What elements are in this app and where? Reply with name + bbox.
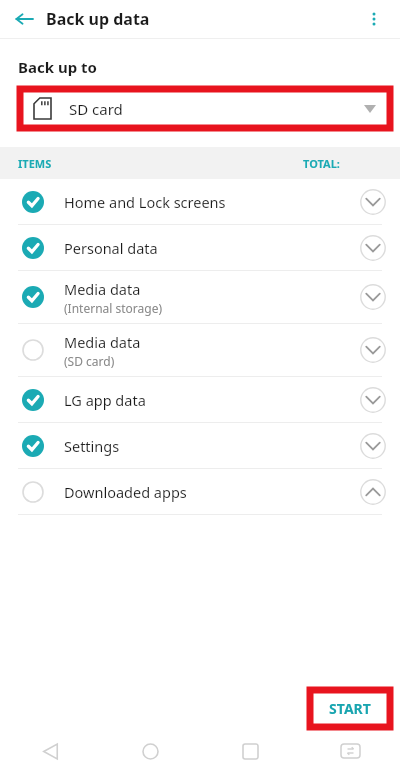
button[interactable]: SD card <box>24 93 386 124</box>
staticText: Downloaded apps <box>64 482 187 502</box>
button[interactable]: More options <box>358 3 390 35</box>
staticText: Back up to <box>18 57 97 77</box>
button[interactable]: Recent apps <box>200 733 300 769</box>
staticText: ITEMS <box>18 156 52 171</box>
staticText: Media data <box>64 332 141 352</box>
button[interactable]: Expand Media data <box>358 282 388 312</box>
button[interactable]: Expand LG app data <box>358 385 388 415</box>
staticText: (SD card) <box>64 353 115 369</box>
staticText: START <box>329 699 371 718</box>
staticText: LG app data <box>64 390 146 410</box>
button[interactable]: Expand Home and Lock screens <box>358 187 388 217</box>
staticText: Home and Lock screens <box>64 192 226 212</box>
button[interactable]: Media data <box>0 271 400 323</box>
button[interactable]: START <box>314 694 386 723</box>
button[interactable]: LG app data <box>0 377 400 422</box>
button[interactable]: Dual window <box>300 733 400 769</box>
staticText: Media data <box>64 279 141 299</box>
staticText: TOTAL: <box>303 156 340 171</box>
button[interactable]: Media data <box>0 324 400 376</box>
button[interactable]: Home <box>100 733 200 769</box>
button[interactable]: Expand Media data <box>358 335 388 365</box>
button[interactable]: Personal data <box>0 225 400 270</box>
button[interactable]: Expand Personal data <box>358 233 388 263</box>
button[interactable]: Collapse Downloaded apps <box>358 477 388 507</box>
button[interactable]: Downloaded apps <box>0 469 400 514</box>
staticText: Personal data <box>64 238 158 258</box>
button[interactable]: Back <box>10 5 38 33</box>
staticText: Back up data <box>46 8 150 30</box>
button[interactable]: Settings <box>0 423 400 468</box>
button[interactable]: Expand Settings <box>358 431 388 461</box>
button[interactable]: Home and Lock screens <box>0 179 400 224</box>
staticText: Settings <box>64 436 120 456</box>
button[interactable]: Back <box>0 733 100 769</box>
staticText: (Internal storage) <box>64 300 163 316</box>
staticText: SD card <box>69 99 123 119</box>
